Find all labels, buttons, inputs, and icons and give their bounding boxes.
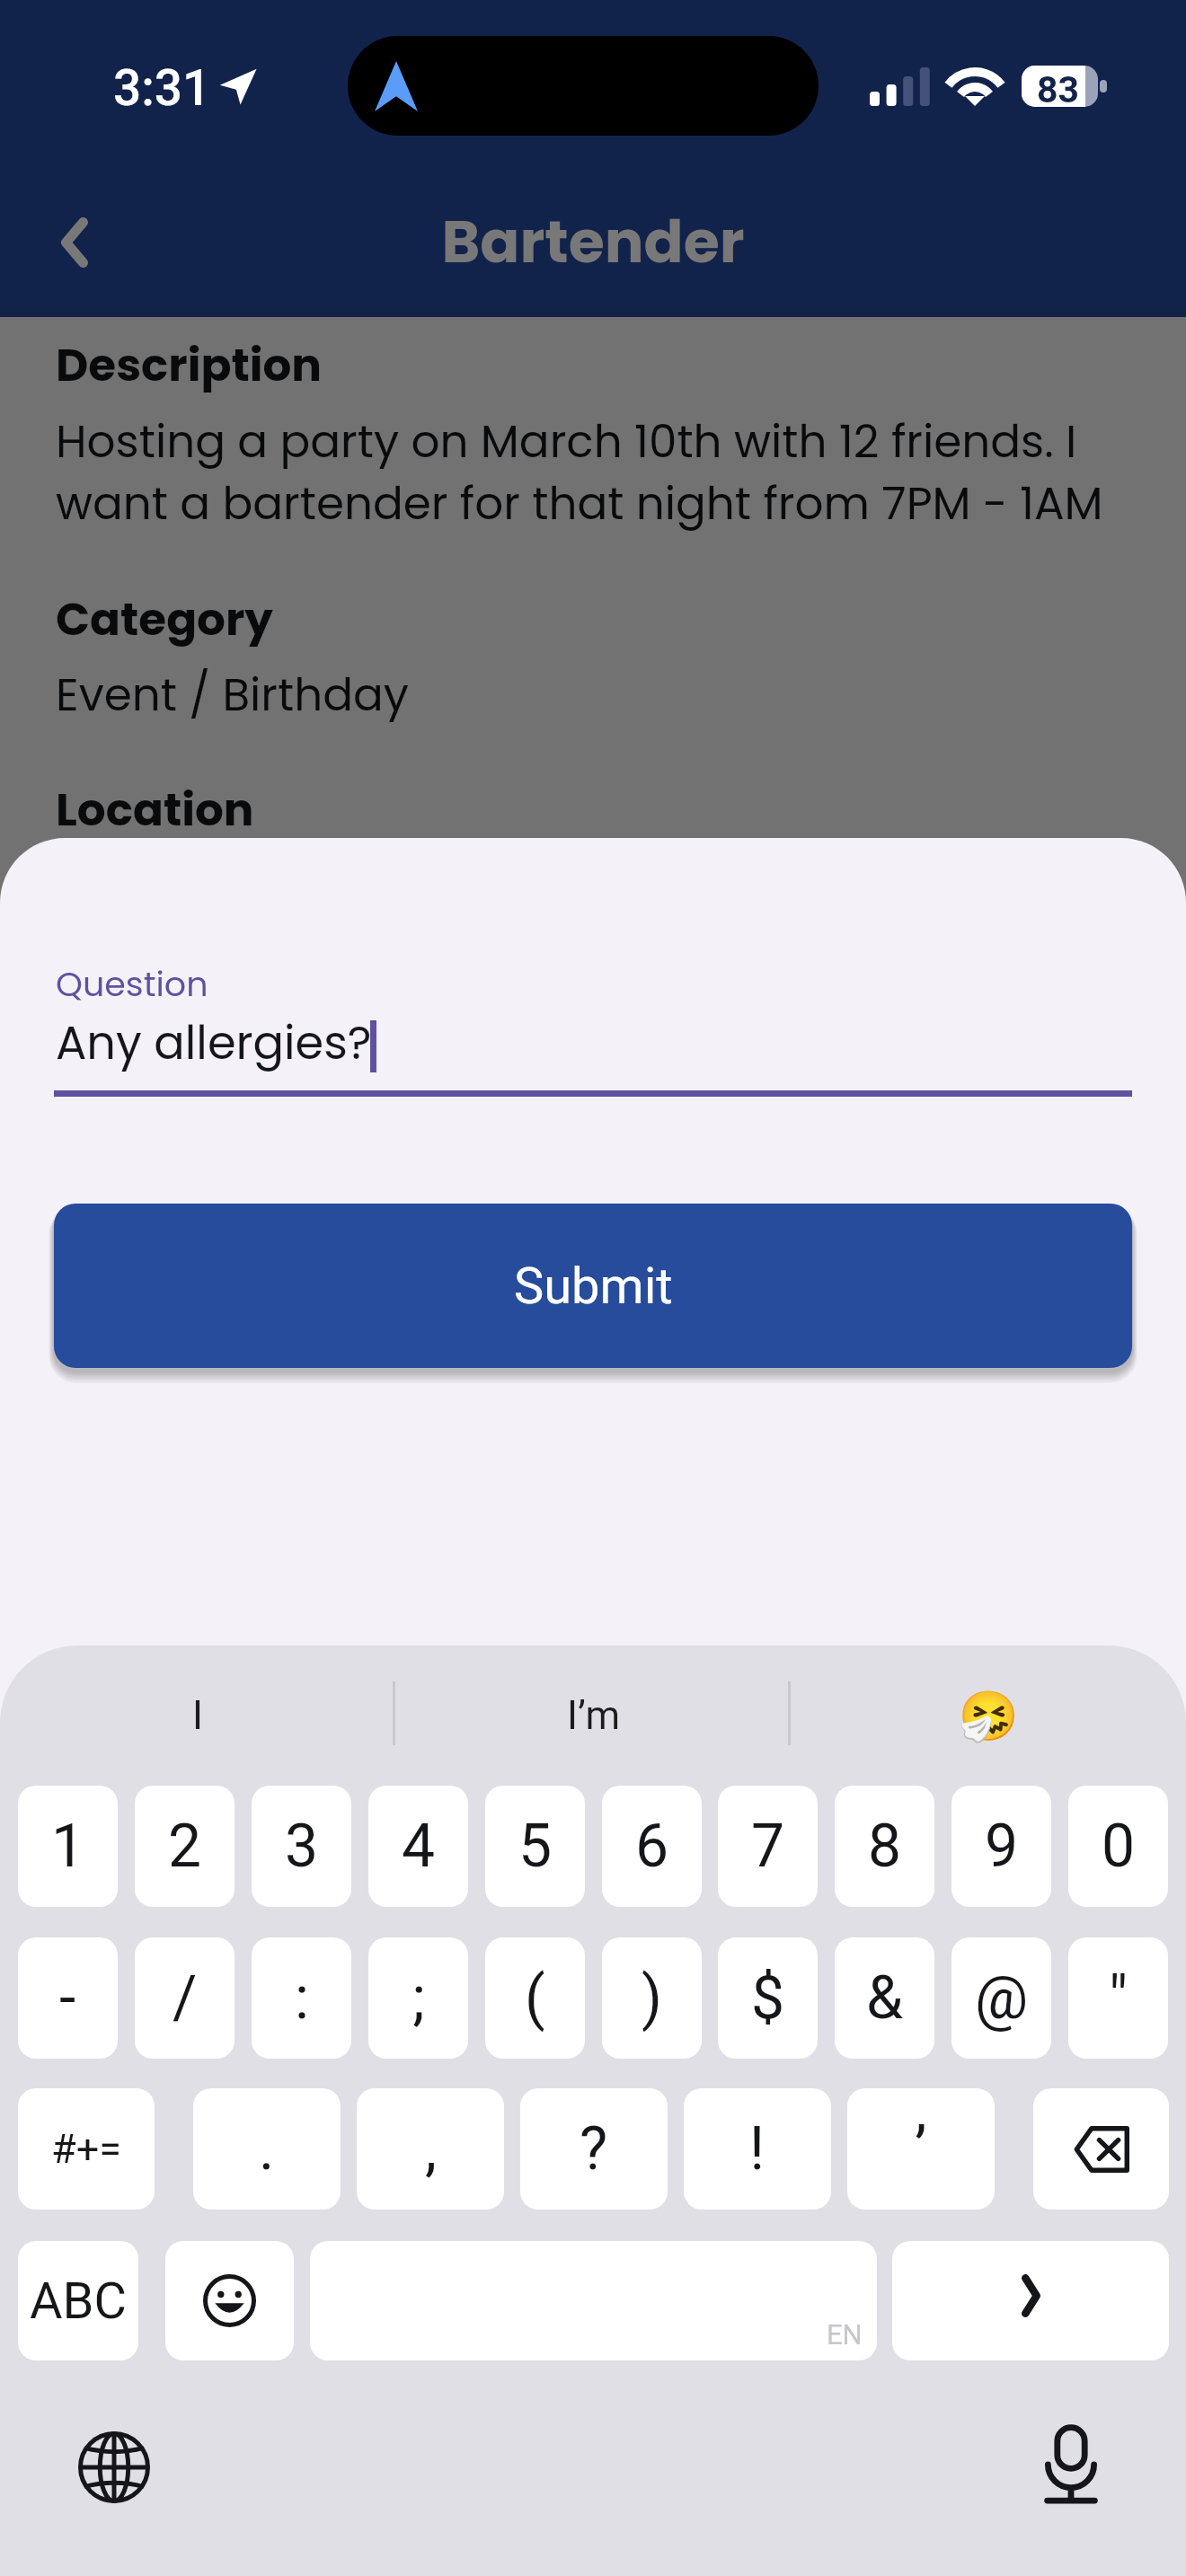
staticText: Question — [56, 960, 208, 1008]
staticText: 7 — [751, 1812, 785, 1881]
staticText: ’ — [915, 2114, 927, 2183]
button[interactable]: 7 — [718, 1786, 818, 1907]
staticText: 0 — [1102, 1812, 1136, 1881]
staticText: , — [425, 2114, 437, 2183]
button[interactable]: 1 — [18, 1786, 118, 1907]
staticText: 5 — [518, 1812, 553, 1881]
staticText: Event / Birthday — [56, 664, 409, 727]
button[interactable]: Space — [310, 2241, 877, 2360]
button[interactable]: , — [357, 2088, 504, 2210]
button[interactable]: - — [18, 1937, 118, 2059]
staticText: @ — [975, 1963, 1029, 2033]
staticText: Hosting a party on March 10th with 12 fr… — [56, 410, 1134, 534]
staticText: 6 — [635, 1812, 669, 1881]
staticText: Location — [56, 779, 254, 842]
staticText: $ — [751, 1963, 785, 2033]
staticText: ( — [525, 1963, 545, 2033]
button[interactable]: Submit — [54, 1204, 1132, 1368]
button[interactable]: & — [835, 1937, 934, 2059]
staticText: . — [259, 2114, 275, 2183]
staticText: 4 — [402, 1812, 436, 1881]
staticText: - — [59, 1963, 76, 2033]
button[interactable]: Back — [25, 193, 124, 292]
button[interactable]: ABC — [18, 2241, 138, 2360]
staticText: : — [295, 1963, 309, 2033]
button[interactable]: $ — [718, 1937, 818, 2059]
staticText: Any allergies? — [56, 1010, 372, 1074]
button[interactable]: ) — [602, 1937, 702, 2059]
button[interactable]: : — [252, 1937, 351, 2059]
button[interactable]: 9 — [951, 1786, 1051, 1907]
button[interactable]: I’m — [395, 1645, 791, 1786]
staticText: 1 — [51, 1812, 85, 1881]
staticText: / — [173, 1963, 198, 2033]
button[interactable]: 2 — [135, 1786, 235, 1907]
staticText: Category — [56, 588, 273, 651]
button[interactable]: I — [0, 1645, 395, 1786]
staticText: #+= — [51, 2125, 121, 2173]
button[interactable]: 🤧 — [791, 1645, 1186, 1786]
button[interactable]: Change keyboard — [78, 2431, 150, 2503]
button[interactable]: 0 — [1068, 1786, 1168, 1907]
staticText: ABC — [30, 2272, 127, 2331]
button[interactable]: Backspace — [1033, 2088, 1169, 2210]
button[interactable]: / — [135, 1937, 235, 2059]
button[interactable]: ’ — [847, 2088, 995, 2210]
staticText: ; — [412, 1963, 425, 2033]
button[interactable]: #+= — [18, 2088, 155, 2210]
button[interactable]: @ — [951, 1937, 1051, 2059]
button[interactable]: 4 — [368, 1786, 468, 1907]
staticText: Bartender — [0, 201, 1186, 283]
staticText: 9 — [985, 1812, 1019, 1881]
staticText: Submit — [514, 1257, 673, 1316]
button[interactable]: ( — [485, 1937, 585, 2059]
staticText: Description — [56, 334, 322, 397]
button[interactable]: Dictation — [1035, 2425, 1107, 2504]
staticText: 8 — [868, 1812, 902, 1881]
staticText: 3 — [285, 1812, 319, 1881]
button[interactable]: Emoji — [165, 2241, 294, 2360]
staticText: I — [192, 1692, 203, 1739]
staticText: ! — [749, 2114, 766, 2183]
staticText: 3:31 — [113, 59, 211, 117]
button[interactable]: Return — [892, 2241, 1169, 2360]
button[interactable]: 3 — [252, 1786, 351, 1907]
staticText: 🤧 — [958, 1688, 1019, 1744]
button[interactable]: 6 — [602, 1786, 702, 1907]
staticText: I’m — [567, 1692, 620, 1739]
staticText: " — [1109, 1963, 1128, 2033]
staticText: EN — [827, 2318, 863, 2351]
staticText: & — [866, 1963, 904, 2033]
staticText: ? — [580, 2114, 608, 2183]
staticText: 83 — [1037, 68, 1080, 107]
button[interactable]: ? — [520, 2088, 668, 2210]
staticText: 2 — [168, 1812, 202, 1881]
button[interactable]: 5 — [485, 1786, 585, 1907]
button[interactable]: ; — [368, 1937, 468, 2059]
staticText: ) — [642, 1963, 662, 2033]
button[interactable]: " — [1068, 1937, 1168, 2059]
button[interactable]: 8 — [835, 1786, 934, 1907]
button[interactable]: . — [193, 2088, 341, 2210]
button[interactable]: ! — [684, 2088, 831, 2210]
